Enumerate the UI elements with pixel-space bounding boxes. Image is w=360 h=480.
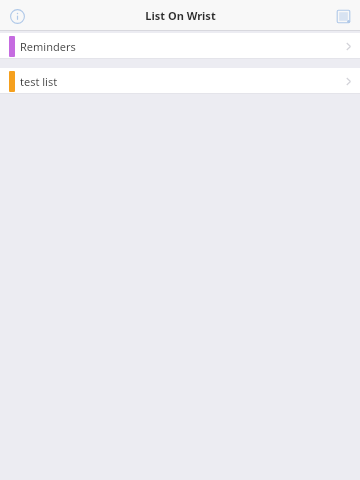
button[interactable]: Info <box>6 5 28 27</box>
button[interactable]: test list <box>0 68 360 94</box>
staticText: List On Wrist <box>145 8 216 23</box>
button[interactable]: Reminders <box>0 33 360 59</box>
staticText: Reminders <box>20 39 76 54</box>
button[interactable]: New list <box>332 5 354 27</box>
staticText: test list <box>20 74 58 89</box>
